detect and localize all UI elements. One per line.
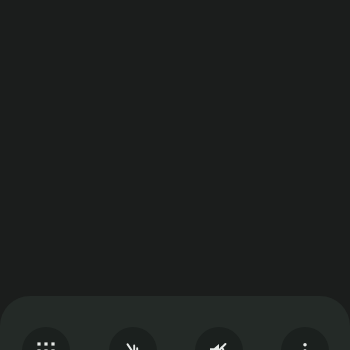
button[interactable]: Mute <box>195 327 243 350</box>
button[interactable]: Apps <box>22 327 70 350</box>
button[interactable]: Touch lock <box>109 327 157 350</box>
button[interactable]: More options <box>281 327 329 350</box>
